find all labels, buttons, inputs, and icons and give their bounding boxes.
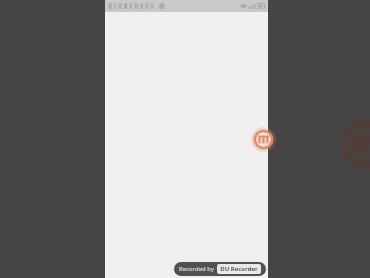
button[interactable]: Recorded by bbox=[174, 262, 266, 276]
staticText: DU Recorder bbox=[220, 265, 258, 273]
staticText: Recorded by bbox=[179, 265, 214, 273]
button[interactable]: Recorder floating button bbox=[251, 127, 276, 152]
